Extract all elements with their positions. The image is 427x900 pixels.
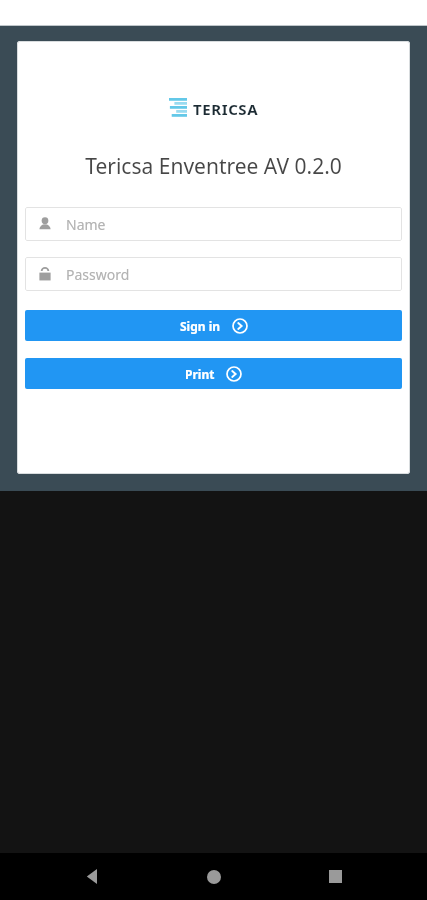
staticText: Sign in xyxy=(180,318,221,334)
button[interactable]: Recent apps xyxy=(306,853,364,900)
button[interactable]: Sign in xyxy=(25,310,402,341)
staticText: Tericsa Enventree AV 0.2.0 xyxy=(17,152,410,181)
staticText: Print xyxy=(185,366,215,382)
button[interactable]: Home xyxy=(185,853,243,900)
button[interactable]: Password xyxy=(25,257,402,291)
staticText: Name xyxy=(66,215,106,234)
staticText: TERICSA xyxy=(193,99,259,119)
button[interactable]: Back xyxy=(63,853,121,900)
button[interactable]: Name xyxy=(25,207,402,241)
staticText: Password xyxy=(66,265,130,284)
button[interactable]: Print xyxy=(25,358,402,389)
